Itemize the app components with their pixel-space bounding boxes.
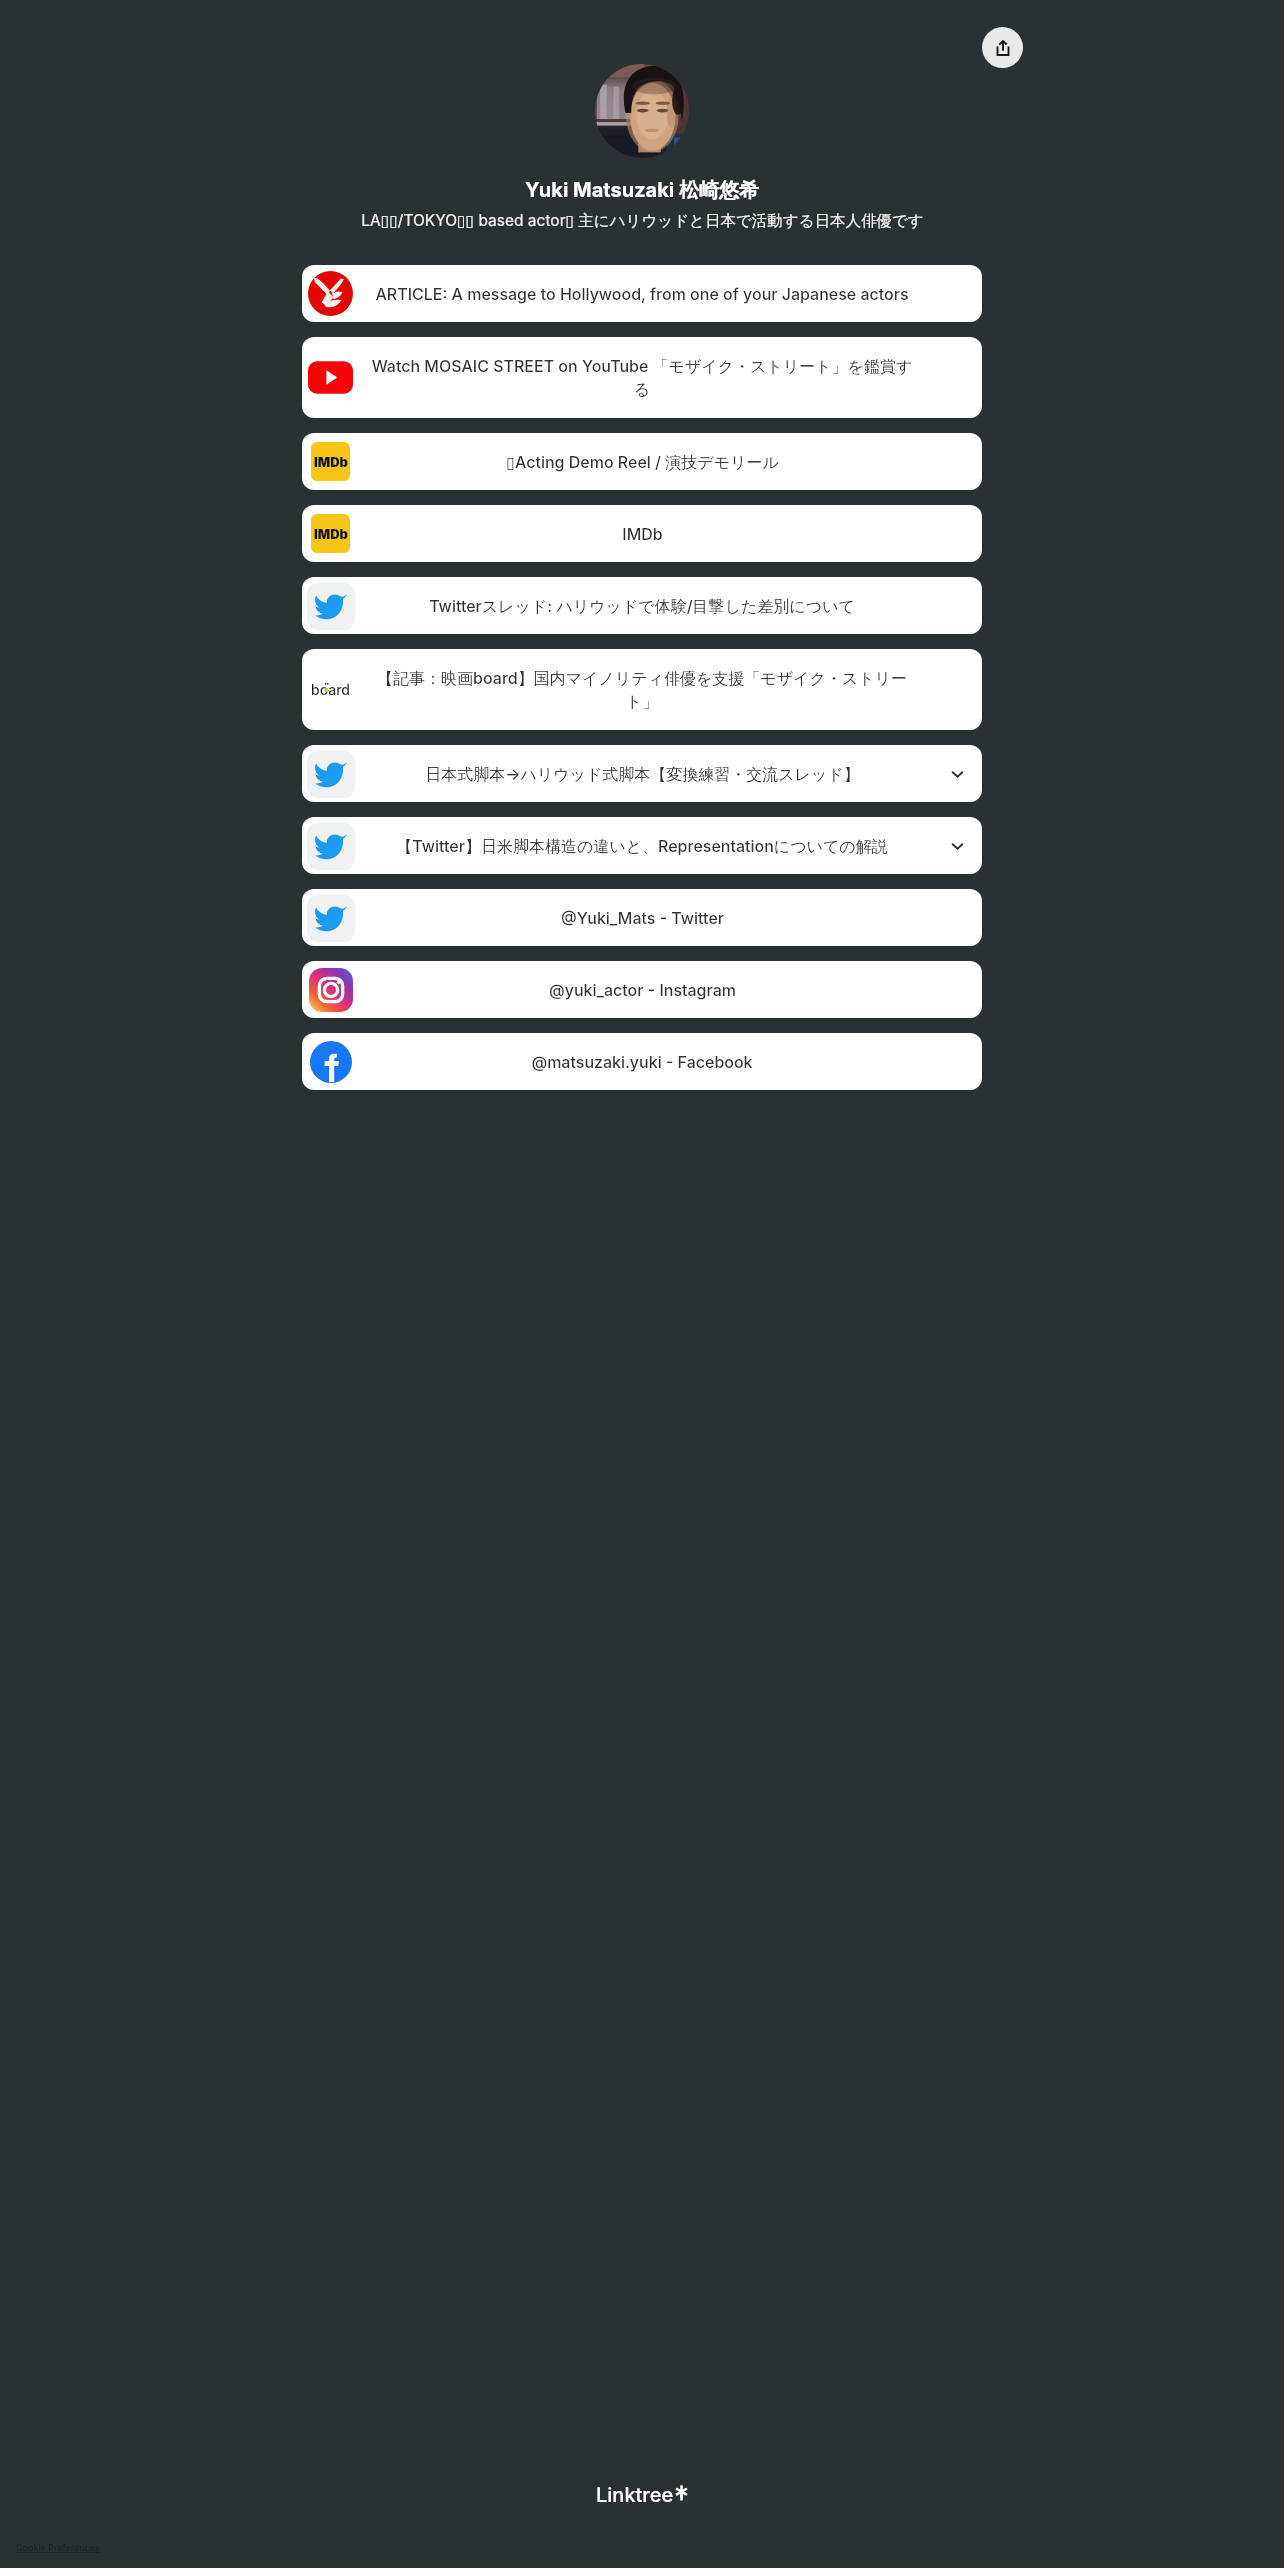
staticText: board bbox=[311, 681, 350, 698]
staticText: ▯Acting Demo Reel / 演技デモリール bbox=[506, 450, 779, 474]
staticText: LA▯▯/TOKYO▯▯ based actor▯ 主にハリウッドと日本で活動す… bbox=[361, 211, 924, 231]
staticText: Yuki Matsuzaki 松崎悠希 bbox=[525, 178, 759, 203]
button[interactable]: @yuki_actor - Instagram bbox=[302, 961, 982, 1018]
button[interactable]: 【Twitter】日米脚本構造の違いと、Representationについての解… bbox=[302, 817, 982, 874]
staticText: IMDb bbox=[314, 526, 348, 542]
button[interactable]: 【記事：映画board】国内マイノリティ俳優を支援「モザイク・ストリート」 bbox=[302, 649, 982, 730]
staticText: ARTICLE: A message to Hollywood, from on… bbox=[375, 282, 909, 305]
button[interactable]: Share bbox=[982, 27, 1023, 68]
staticText: IMDb bbox=[314, 454, 348, 470]
staticText: IMDb bbox=[622, 522, 663, 545]
staticText: Linktree bbox=[596, 2483, 674, 2507]
button[interactable]: Twitterスレッド: ハリウッドで体験/目撃した差別について bbox=[302, 577, 982, 634]
staticText: 【Twitter】日米脚本構造の違いと、Representationについての解… bbox=[396, 834, 888, 858]
button[interactable]: 日本式脚本→ハリウッド式脚本【変換練習・交流スレッド】 bbox=[302, 745, 982, 802]
button[interactable]: @Yuki_Mats - Twitter bbox=[302, 889, 982, 946]
button[interactable]: ▯Acting Demo Reel / 演技デモリール bbox=[302, 433, 982, 490]
staticText: Watch MOSAIC STREET on YouTube 「モザイク・ストリ… bbox=[368, 354, 916, 401]
staticText: @yuki_actor - Instagram bbox=[549, 978, 736, 1001]
staticText: @matsuzaki.yuki - Facebook bbox=[531, 1050, 753, 1073]
button[interactable]: ARTICLE: A message to Hollywood, from on… bbox=[302, 265, 982, 322]
staticText: @Yuki_Mats - Twitter bbox=[561, 906, 724, 929]
staticText: 【記事：映画board】国内マイノリティ俳優を支援「モザイク・ストリート」 bbox=[368, 666, 916, 713]
button[interactable]: IMDb bbox=[302, 505, 982, 562]
button[interactable]: Cookie Preferences bbox=[16, 2542, 100, 2553]
button[interactable]: @matsuzaki.yuki - Facebook bbox=[302, 1033, 982, 1090]
staticText: Twitterスレッド: ハリウッドで体験/目撃した差別について bbox=[429, 594, 855, 618]
button[interactable]: Watch MOSAIC STREET on YouTube 「モザイク・ストリ… bbox=[302, 337, 982, 418]
staticText: 日本式脚本→ハリウッド式脚本【変換練習・交流スレッド】 bbox=[425, 762, 860, 786]
